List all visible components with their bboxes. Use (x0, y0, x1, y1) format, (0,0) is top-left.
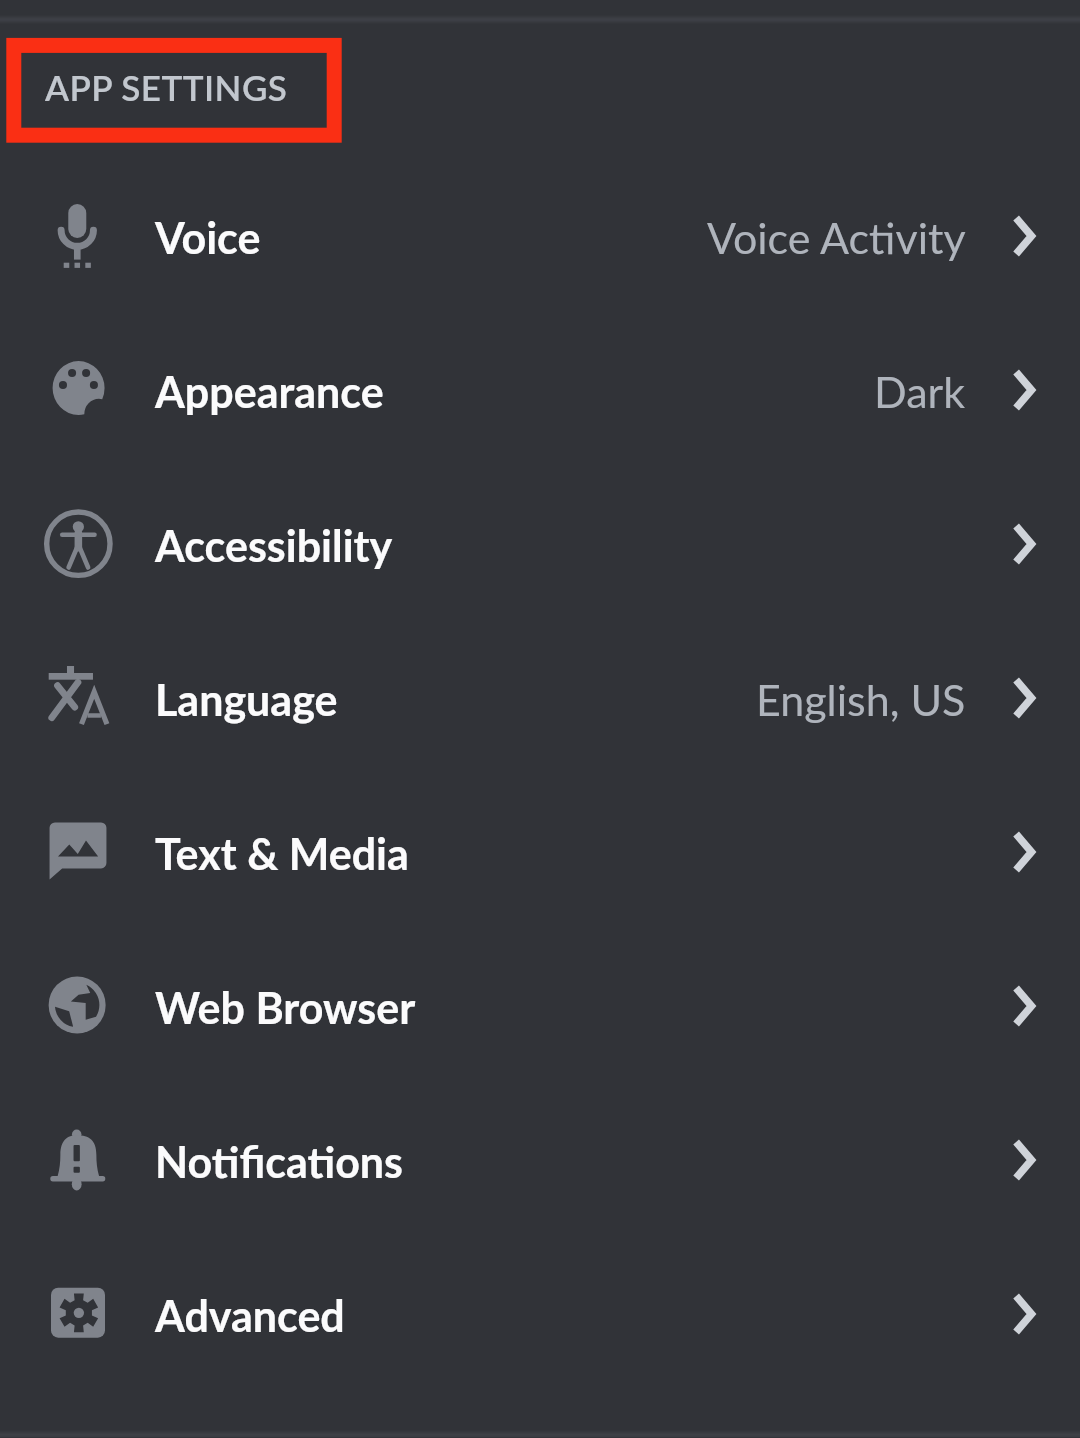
other: Open (1012, 1293, 1036, 1335)
staticText: Advanced (155, 1290, 345, 1342)
button[interactable]: Voice (0, 161, 1080, 315)
other: Open (1012, 369, 1036, 411)
other: Open (1012, 677, 1036, 719)
other: Open (1012, 831, 1036, 873)
staticText: Voice Activity (707, 212, 966, 264)
button[interactable]: Text & Media (0, 777, 1080, 931)
staticText: Web Browser (155, 982, 416, 1034)
staticText: Voice (155, 212, 261, 264)
other: Open (1012, 523, 1036, 565)
button[interactable]: Web Browser (0, 931, 1080, 1085)
button[interactable]: Appearance (0, 315, 1080, 469)
staticText: Text & Media (155, 828, 409, 880)
button[interactable]: Accessibility (0, 469, 1080, 623)
staticText: Dark (874, 366, 966, 418)
other: Open (1012, 1139, 1036, 1181)
staticText: APP SETTINGS (45, 66, 288, 108)
other: Open (1012, 215, 1036, 257)
button[interactable]: Advanced (0, 1239, 1080, 1393)
other: Open (1012, 985, 1036, 1027)
staticText: English, US (756, 674, 966, 726)
button[interactable]: Notifications (0, 1085, 1080, 1239)
staticText: Appearance (155, 366, 384, 418)
staticText: Notifications (155, 1136, 404, 1188)
staticText: Accessibility (155, 520, 393, 572)
staticText: Language (155, 674, 338, 726)
button[interactable]: Language (0, 623, 1080, 777)
